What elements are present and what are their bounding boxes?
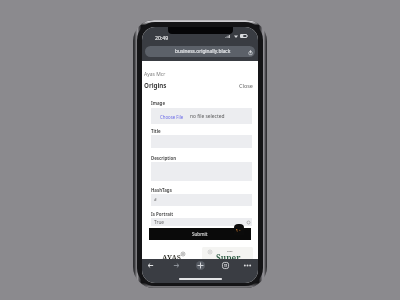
button[interactable]: Share: [247, 49, 253, 55]
button[interactable]: Close: [239, 82, 253, 89]
staticText: HashTags: [151, 187, 172, 193]
staticText: Ayas Mcr: [144, 71, 166, 78]
button[interactable]: #: [151, 194, 252, 206]
staticText: Description: [151, 155, 177, 161]
staticText: 17: [224, 264, 228, 268]
staticText: AYAS: [227, 250, 233, 253]
button[interactable]: New tab: [194, 259, 206, 271]
staticText: Close: [239, 82, 253, 89]
staticText: #: [154, 197, 157, 203]
button[interactable]: Back: [144, 259, 156, 271]
staticText: no file selected: [190, 113, 225, 120]
staticText: Origins: [144, 81, 167, 89]
button[interactable]: True: [151, 218, 252, 226]
staticText: AYAS: [162, 252, 181, 262]
staticText: Image: [151, 100, 166, 106]
staticText: business.originally.black: [175, 48, 231, 55]
staticText: Choose File: [160, 114, 184, 120]
staticText: Is Portrait: [151, 211, 174, 217]
staticText: Title: [151, 128, 161, 134]
staticText: Submit: [192, 231, 208, 237]
button[interactable]: business.originally.black: [145, 46, 255, 57]
button[interactable]: Forward: [170, 259, 182, 271]
button[interactable]: Choose File: [151, 108, 252, 124]
staticText: Super: [216, 252, 241, 259]
button[interactable]: Submit: [149, 228, 251, 240]
staticText: 20:49: [155, 34, 169, 41]
staticText: True: [154, 219, 165, 226]
button[interactable]: Tabs: [219, 259, 231, 271]
button[interactable]: More options: [241, 259, 253, 271]
